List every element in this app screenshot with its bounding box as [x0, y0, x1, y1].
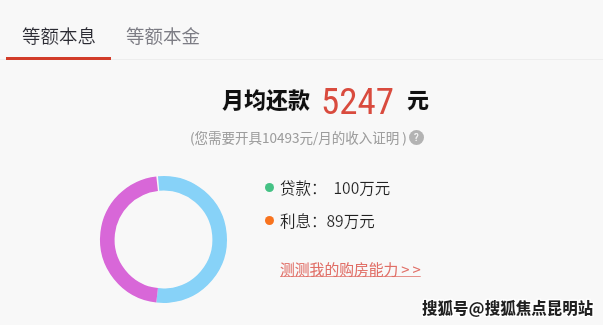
button[interactable]: 测测我的购房能力 > >	[280, 258, 421, 279]
staticText: 搜狐号@搜狐焦点昆明站	[421, 297, 593, 319]
staticText: 利息：89万元	[280, 209, 375, 231]
staticText: 搜狐号@搜狐焦点昆明站	[423, 297, 595, 319]
staticText: 搜狐号@搜狐焦点昆明站	[422, 297, 594, 319]
staticText: 搜狐号@搜狐焦点昆明站	[422, 295, 594, 317]
button[interactable]: 说明	[409, 130, 424, 145]
staticText: 等额本息	[22, 22, 97, 49]
staticText: 5247	[321, 80, 395, 123]
staticText: 搜狐号@搜狐焦点昆明站	[421, 296, 593, 318]
staticText: 测测我的购房能力 > >	[280, 258, 421, 279]
staticText: 搜狐号@搜狐焦点昆明站	[422, 296, 594, 318]
staticText: 月均还款	[222, 82, 311, 114]
staticText: 搜狐号@搜狐焦点昆明站	[421, 295, 593, 317]
staticText: 贷款： 100万元	[280, 176, 391, 198]
button[interactable]: 等额本息	[0, 0, 114, 60]
staticText: 搜狐号@搜狐焦点昆明站	[423, 296, 595, 318]
staticText: 元	[407, 82, 430, 114]
staticText: 等额本金	[126, 22, 201, 49]
staticText: ?	[414, 131, 419, 144]
button[interactable]: 等额本金	[114, 0, 223, 60]
button[interactable]: 贷款： 100万元	[265, 176, 391, 198]
button[interactable]: 利息：89万元	[265, 209, 375, 231]
staticText: (您需要开具10493元/月的收入证明 )	[190, 127, 407, 147]
staticText: 搜狐号@搜狐焦点昆明站	[423, 295, 595, 317]
